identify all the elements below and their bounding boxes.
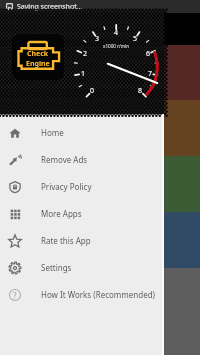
staticText: More Apps (41, 208, 82, 219)
staticText: How It Works (Recommended) (41, 289, 155, 300)
button[interactable]: Settings (0, 254, 164, 281)
staticText: Rate this App (41, 235, 91, 246)
staticText: 8 (138, 86, 143, 96)
button[interactable]: Home (0, 119, 164, 146)
staticText: 5 (133, 34, 138, 44)
staticText: Settings (41, 262, 72, 273)
button[interactable]: Privacy Policy (0, 173, 164, 200)
staticText: Remove Ads (41, 154, 88, 165)
staticText: 2 (83, 49, 88, 59)
staticText: ? (13, 290, 17, 301)
button[interactable]: ? (0, 281, 164, 308)
button[interactable]: More Apps (0, 200, 164, 227)
staticText: 7 (148, 69, 153, 79)
staticText: Check (27, 49, 49, 59)
staticText: Saving screenshot… (17, 2, 83, 12)
staticText: Privacy Policy (41, 181, 92, 192)
staticText: Engine (26, 59, 50, 69)
staticText: 6 (146, 49, 151, 59)
staticText: 0 (90, 86, 95, 96)
button[interactable]: Rate this App (0, 227, 164, 254)
staticText: 4 (114, 28, 119, 38)
button[interactable]: Remove Ads (0, 146, 164, 173)
staticText: x1000 r/min (103, 43, 130, 49)
staticText: 1 (81, 69, 86, 79)
staticText: Home (41, 127, 64, 138)
staticText: 3 (95, 34, 100, 44)
